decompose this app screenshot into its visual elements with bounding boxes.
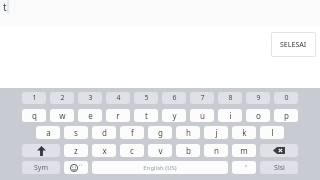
staticText: 9 [256,93,261,103]
staticText: f [131,127,134,138]
button[interactable]: t [0,0,10,14]
staticText: c [130,145,134,156]
staticText: x [102,145,107,156]
button[interactable]: k [232,126,256,139]
button[interactable]: b [176,144,200,157]
staticText: Slsi [274,163,285,173]
button[interactable]: y [162,109,186,122]
button[interactable]: e [78,109,102,122]
button[interactable]: t [134,109,158,122]
staticText: English (US) [143,164,177,172]
staticText: Sym [34,163,48,173]
button[interactable]: o [246,109,270,122]
staticText: u [200,110,205,121]
button[interactable]: i [218,109,242,122]
button[interactable]: 2 [50,92,74,104]
button[interactable]: q [22,109,46,122]
staticText: q [32,110,37,121]
button[interactable]: 9 [246,92,270,104]
staticText: j [215,127,218,138]
staticText: t [145,110,148,121]
staticText: g [158,127,163,138]
staticText: a [46,127,51,138]
staticText: l [271,127,274,138]
staticText: i [229,110,232,121]
button[interactable]: n [204,144,228,157]
staticText: y [172,110,177,121]
button[interactable]: 0 [274,92,298,104]
staticText: p [284,110,289,121]
staticText: 5 [144,93,149,103]
button[interactable]: Backspace [260,144,298,157]
staticText: 0 [284,93,289,103]
button[interactable]: p [274,109,298,122]
staticText: v [158,145,163,156]
button[interactable]: a [36,126,60,139]
button[interactable]: 5 [134,92,158,104]
staticText: o [256,110,261,121]
button[interactable]: Slsi [260,161,298,174]
button[interactable]: s [64,126,88,139]
button[interactable]: Shift [22,144,60,157]
button[interactable]: 8 [218,92,242,104]
button[interactable]: g [148,126,172,139]
button[interactable]: l [260,126,284,139]
button[interactable]: h [176,126,200,139]
staticText: w [59,110,66,121]
staticText: s [74,127,78,138]
button[interactable]: Sym [22,161,60,174]
button[interactable]: SELESAI [271,32,316,57]
button[interactable]: m [232,144,256,157]
button[interactable]: 3 [78,92,102,104]
staticText: b [186,145,191,156]
staticText: 8 [228,93,233,103]
button[interactable]: English (US) [92,161,228,174]
button[interactable]: c [120,144,144,157]
staticText: z [74,145,78,156]
button[interactable]: 6 [162,92,186,104]
button[interactable]: f [120,126,144,139]
button[interactable]: z [64,144,88,157]
staticText: t [3,0,7,14]
button[interactable]: r [106,109,130,122]
button[interactable]: 1 [22,92,46,104]
button[interactable]: u [190,109,214,122]
button[interactable]: v [148,144,172,157]
staticText: 3 [88,93,93,103]
button[interactable]: x [92,144,116,157]
staticText: 7 [200,93,205,103]
staticText: 4 [116,93,121,103]
staticText: k [242,127,247,138]
staticText: 6 [172,93,177,103]
staticText: r [116,110,120,121]
staticText: h [186,127,191,138]
button[interactable]: w [50,109,74,122]
staticText: e [88,110,93,121]
staticText: 2 [60,93,65,103]
staticText: n [214,145,219,156]
staticText: SELESAI [280,40,307,50]
staticText: 1 [32,93,37,103]
button[interactable]: 7 [190,92,214,104]
staticText: d [102,127,107,138]
staticText: m [240,145,248,156]
button[interactable]: Sticker [232,161,256,174]
button[interactable]: d [92,126,116,139]
button[interactable]: 4 [106,92,130,104]
button[interactable]: j [204,126,228,139]
button[interactable]: Emoji [64,161,88,174]
